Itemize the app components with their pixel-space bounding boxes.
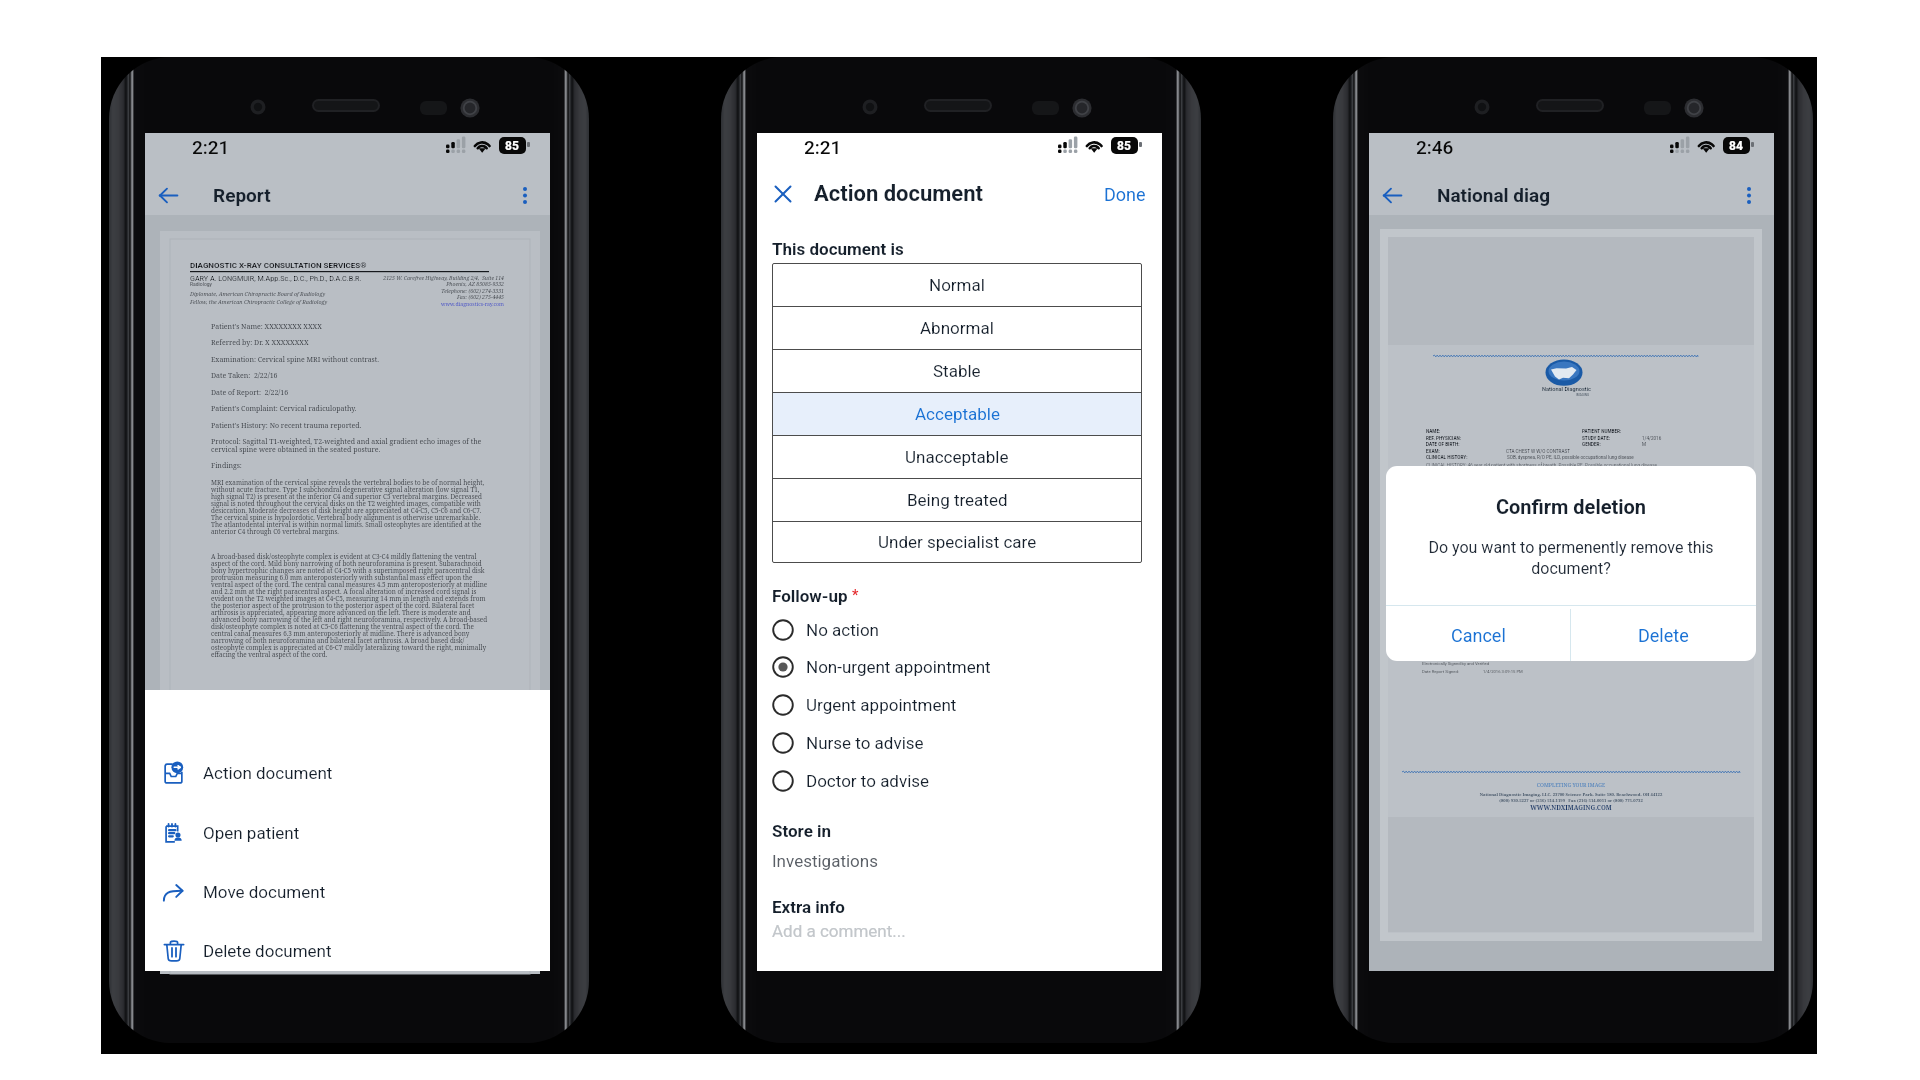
staticText: Action document bbox=[203, 763, 333, 783]
staticText: 85 bbox=[505, 139, 519, 153]
staticText: STUDY DATE: bbox=[1582, 436, 1611, 441]
staticText: Report bbox=[213, 184, 271, 206]
staticText: National Diagnostic bbox=[1542, 386, 1592, 393]
button[interactable]: Being treated bbox=[772, 478, 1142, 521]
button[interactable]: Delete bbox=[1571, 609, 1756, 661]
button[interactable]: Doctor to advise bbox=[757, 764, 1162, 798]
staticText: GARY A. LONGMUIR, M.App.Sc., D.C., Ph.D.… bbox=[190, 274, 362, 282]
staticText: REF. PHYSICIAN: bbox=[1426, 436, 1462, 441]
staticText: National Diagnostic Imaging, LLC, 23700 … bbox=[1380, 792, 1762, 798]
staticText: www.diagnostics-ray.com bbox=[304, 300, 504, 307]
staticText: GENDER: bbox=[1582, 442, 1601, 447]
staticText: Date Taken: 2/22/16 bbox=[211, 371, 278, 381]
staticText: This document is bbox=[772, 239, 904, 259]
staticText: Phoenix, AZ 85085-9332 bbox=[304, 280, 504, 287]
staticText: Telephone: (602) 274-3331 bbox=[304, 287, 504, 294]
staticText: 2125 W. Carefree Highway, Building 2/4, … bbox=[304, 274, 504, 281]
button[interactable]: Normal bbox=[772, 263, 1142, 306]
staticText: CTA CHEST W W/O CONTRAST bbox=[1506, 449, 1570, 454]
staticText: Do you want to permenently remove this d… bbox=[1416, 538, 1726, 578]
staticText: Unacceptable bbox=[905, 447, 1009, 467]
staticText: Acceptable bbox=[915, 404, 1000, 424]
staticText: CLINICAL HISTORY: bbox=[1426, 455, 1468, 460]
button[interactable]: Non-urgent appointment bbox=[757, 650, 1162, 684]
staticText: MRI examination of the cervical spine re… bbox=[211, 478, 488, 536]
staticText: Cancel bbox=[1451, 625, 1506, 646]
staticText: Nurse to advise bbox=[806, 733, 924, 753]
button[interactable]: More options bbox=[1734, 180, 1764, 210]
staticText: WWW.NDXIMAGING.COM bbox=[1380, 803, 1762, 811]
staticText: Abnormal bbox=[920, 318, 994, 338]
staticText: 1/4/2016 3:09:15 PM bbox=[1483, 669, 1523, 674]
button[interactable]: Back bbox=[153, 180, 183, 210]
staticText: Referred by: Dr. X XXXXXXXX bbox=[211, 338, 309, 348]
staticText: SOB, dyspnea, R/O PE, ILD, possible occu… bbox=[1507, 455, 1634, 460]
button[interactable]: Done bbox=[1102, 180, 1148, 209]
staticText: 2:21 bbox=[804, 136, 842, 158]
button[interactable]: More options bbox=[510, 180, 540, 210]
staticText: Being treated bbox=[907, 490, 1008, 510]
button[interactable]: Move document bbox=[145, 875, 550, 909]
staticText: (800) 930-5227 or (216) 514-1199 Fax (21… bbox=[1380, 798, 1762, 804]
staticText: Fax: (602) 275-4445 bbox=[304, 293, 504, 300]
staticText: Doctor to advise bbox=[806, 771, 930, 791]
button[interactable]: Abnormal bbox=[772, 306, 1142, 349]
staticText: Stable bbox=[933, 361, 981, 381]
staticText: EXAM: bbox=[1426, 449, 1440, 454]
staticText: Add a comment... bbox=[772, 921, 906, 941]
button[interactable]: Stable bbox=[772, 349, 1142, 392]
staticText: Move document bbox=[203, 882, 326, 902]
staticText: National diag bbox=[1437, 184, 1551, 206]
staticText: Non-urgent appointment bbox=[806, 657, 991, 677]
staticText: DATE OF BIRTH: bbox=[1426, 442, 1460, 447]
staticText: Delete bbox=[1638, 625, 1689, 646]
staticText: CLINICAL HISTORY: 46 year old patient wi… bbox=[1426, 463, 1659, 468]
staticText: Fellow, the American Chiropractic Colleg… bbox=[190, 298, 328, 305]
staticText: NAME: bbox=[1426, 429, 1441, 434]
button[interactable]: Cancel bbox=[1386, 609, 1570, 661]
staticText: Date of Report: 2/22/16 bbox=[211, 388, 289, 398]
staticText: Extra info bbox=[772, 897, 845, 917]
button[interactable]: Urgent appointment bbox=[757, 688, 1162, 722]
staticText: Electronically Signed by and Verified bbox=[1422, 661, 1490, 666]
staticText: Delete document bbox=[203, 941, 332, 961]
staticText: * bbox=[852, 587, 859, 603]
staticText: DIAGNOSTIC X-RAY CONSULTATION SERVICES® bbox=[190, 261, 367, 270]
button[interactable]: No action bbox=[757, 613, 1162, 647]
staticText: Radiology bbox=[190, 281, 212, 287]
staticText: Store in bbox=[772, 821, 832, 841]
staticText: Diplomate, American Chiropractic Board o… bbox=[190, 290, 326, 297]
staticText: Confirm deletion bbox=[1386, 495, 1756, 518]
staticText: Done bbox=[1104, 184, 1146, 205]
button[interactable]: Action document bbox=[145, 756, 550, 790]
button[interactable]: Acceptable bbox=[772, 392, 1142, 435]
button[interactable]: Open patient bbox=[145, 816, 550, 850]
staticText: No action bbox=[806, 620, 879, 640]
staticText: A broad-based disk/osteophyte complex is… bbox=[211, 552, 488, 659]
button[interactable]: Delete document bbox=[145, 934, 550, 968]
button[interactable]: Close bbox=[770, 181, 796, 207]
staticText: Follow-up bbox=[772, 586, 848, 606]
staticText: PATIENT NUMBER: bbox=[1582, 429, 1622, 434]
staticText: Examination: Cervical spine MRI without … bbox=[211, 355, 379, 365]
staticText: Action document bbox=[814, 181, 984, 207]
button[interactable]: Nurse to advise bbox=[757, 726, 1162, 760]
staticText: 1/4/2016 bbox=[1642, 436, 1662, 441]
staticText: Findings: bbox=[211, 461, 242, 471]
button[interactable]: Unacceptable bbox=[772, 435, 1142, 478]
staticText: Open patient bbox=[203, 823, 300, 843]
staticText: M bbox=[1642, 442, 1647, 447]
staticText: Patient's Complaint: Cervical radiculopa… bbox=[211, 404, 357, 414]
staticText: 2:46 bbox=[1416, 136, 1454, 158]
staticText: Investigations bbox=[772, 851, 878, 871]
staticText: 2:21 bbox=[192, 136, 230, 158]
staticText: 85 bbox=[1117, 139, 1131, 153]
staticText: Protocol: Sagittal T1-weighted, T2-weigh… bbox=[211, 437, 482, 454]
staticText: Normal bbox=[929, 275, 985, 295]
button[interactable]: Under specialist care bbox=[772, 521, 1142, 563]
staticText: Under specialist care bbox=[878, 532, 1037, 552]
staticText: Date Report Signed: bbox=[1422, 669, 1459, 674]
button[interactable]: Back bbox=[1377, 180, 1407, 210]
staticText: Urgent appointment bbox=[806, 695, 957, 715]
staticText: 84 bbox=[1729, 139, 1743, 153]
